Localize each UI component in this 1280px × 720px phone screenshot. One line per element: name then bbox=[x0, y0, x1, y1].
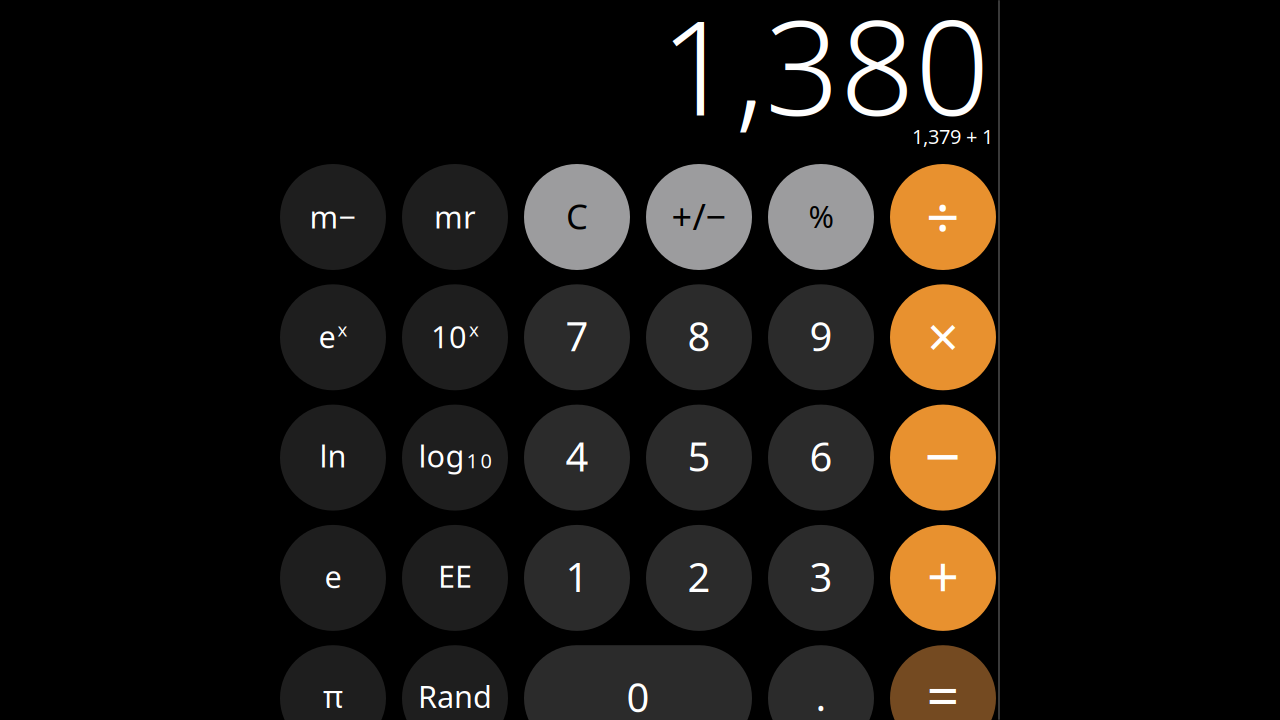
button[interactable]: multiply bbox=[890, 284, 996, 390]
staticText: mr bbox=[434, 196, 476, 237]
staticText: 1 0 bbox=[466, 447, 491, 474]
button[interactable]: memory recall bbox=[402, 164, 508, 270]
button[interactable]: 1 bbox=[524, 525, 630, 631]
button[interactable]: 5 bbox=[646, 405, 752, 511]
staticText: ln bbox=[319, 435, 346, 476]
staticText: x bbox=[337, 317, 347, 342]
staticText: 0 bbox=[626, 670, 649, 720]
staticText: 5 bbox=[687, 429, 710, 483]
staticText: 10 bbox=[431, 316, 467, 357]
button[interactable]: minus bbox=[890, 405, 996, 511]
button[interactable]: 3 bbox=[768, 525, 874, 631]
staticText: % bbox=[808, 196, 833, 236]
staticText: 7 bbox=[565, 309, 588, 362]
staticText: 6 bbox=[809, 429, 832, 483]
button[interactable]: equals bbox=[890, 645, 996, 720]
staticText: 1 bbox=[565, 550, 588, 603]
staticText: 8 bbox=[687, 309, 710, 362]
staticText: x bbox=[469, 317, 479, 342]
staticText: 9 bbox=[809, 309, 832, 362]
staticText: 1,379 + 1 bbox=[912, 123, 993, 150]
button[interactable]: plus minus bbox=[646, 164, 752, 270]
staticText: log bbox=[418, 435, 464, 476]
button[interactable]: ten to the x bbox=[402, 284, 508, 390]
button[interactable]: clear bbox=[524, 164, 630, 270]
staticText: C bbox=[566, 193, 588, 239]
button[interactable]: 0 bbox=[524, 645, 752, 720]
button[interactable]: 2 bbox=[646, 525, 752, 631]
staticText: . bbox=[815, 669, 826, 720]
button[interactable]: 4 bbox=[524, 405, 630, 511]
staticText: 4 bbox=[565, 429, 588, 483]
button[interactable]: 6 bbox=[768, 405, 874, 511]
staticText: − bbox=[924, 413, 961, 498]
staticText: ÷ bbox=[926, 177, 960, 255]
button[interactable]: e bbox=[280, 525, 386, 631]
button[interactable]: memory subtract bbox=[280, 164, 386, 270]
button[interactable]: random bbox=[402, 645, 508, 720]
staticText: +/− bbox=[671, 192, 726, 240]
staticText: + bbox=[927, 538, 959, 613]
staticText: 1,380 bbox=[660, 0, 990, 151]
button[interactable]: pi bbox=[280, 645, 386, 720]
staticText: m− bbox=[309, 196, 356, 237]
staticText: e bbox=[324, 556, 341, 597]
button[interactable]: 9 bbox=[768, 284, 874, 390]
staticText: 3 bbox=[809, 550, 832, 603]
button[interactable]: percent bbox=[768, 164, 874, 270]
staticText: = bbox=[926, 656, 959, 720]
button[interactable]: 7 bbox=[524, 284, 630, 390]
staticText: EE bbox=[438, 555, 472, 596]
staticText: Rand bbox=[418, 676, 492, 716]
staticText: × bbox=[927, 299, 959, 373]
button[interactable]: plus bbox=[890, 525, 996, 631]
button[interactable]: divide bbox=[890, 164, 996, 270]
staticText: e bbox=[318, 316, 335, 357]
staticText: π bbox=[323, 676, 343, 716]
button[interactable]: decimal point bbox=[768, 645, 874, 720]
button[interactable]: exponent bbox=[402, 525, 508, 631]
button[interactable]: natural log bbox=[280, 405, 386, 511]
staticText: 2 bbox=[687, 550, 710, 603]
button[interactable]: 8 bbox=[646, 284, 752, 390]
button[interactable]: log base ten bbox=[402, 405, 508, 511]
button[interactable]: e to the x bbox=[280, 284, 386, 390]
